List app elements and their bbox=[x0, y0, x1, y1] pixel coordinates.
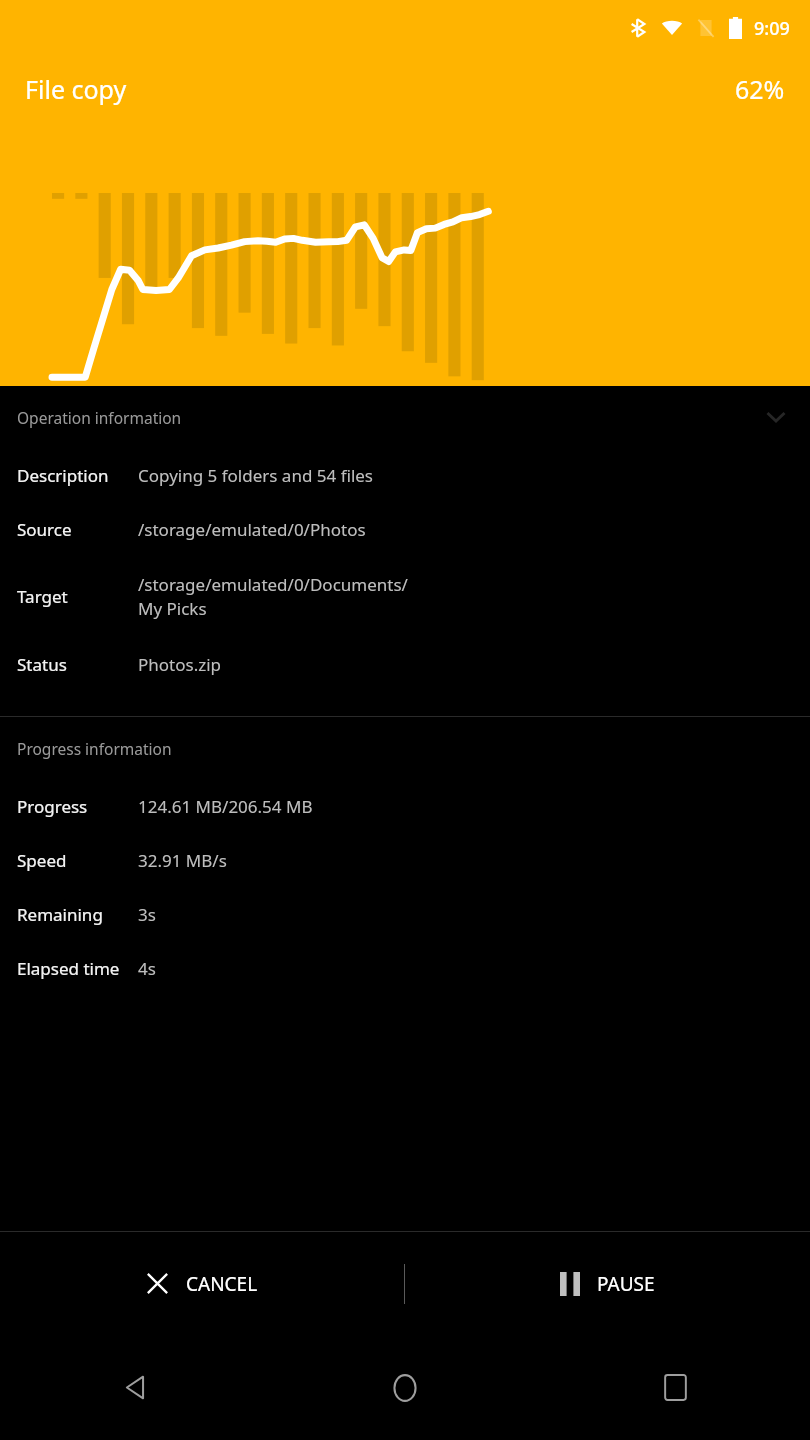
staticText: Description bbox=[17, 464, 138, 487]
staticText: Speed bbox=[17, 849, 138, 872]
button[interactable]: Back bbox=[0, 1335, 270, 1440]
staticText: Photos.zip bbox=[138, 653, 222, 676]
button[interactable]: Operation information bbox=[0, 386, 810, 448]
button[interactable]: CANCEL bbox=[0, 1232, 404, 1335]
button[interactable]: PAUSE bbox=[405, 1232, 810, 1335]
staticText: Progress information bbox=[17, 738, 172, 759]
staticText: 4s bbox=[138, 957, 156, 980]
staticText: CANCEL bbox=[186, 1271, 258, 1297]
staticText: Operation information bbox=[17, 407, 182, 428]
staticText: 124.61 MB/206.54 MB bbox=[138, 795, 313, 818]
staticText: Status bbox=[17, 653, 138, 676]
staticText: PAUSE bbox=[597, 1271, 655, 1297]
staticText: Copying 5 folders and 54 files bbox=[138, 464, 374, 487]
button[interactable]: Home bbox=[270, 1335, 540, 1440]
staticText: Remaining bbox=[17, 903, 138, 926]
button[interactable]: Recent apps bbox=[540, 1335, 810, 1440]
staticText: 32.91 MB/s bbox=[138, 849, 227, 872]
staticText: Target bbox=[17, 585, 138, 608]
staticText: Progress bbox=[17, 795, 138, 818]
staticText: Source bbox=[17, 518, 138, 541]
staticText: /storage/emulated/0/Documents/ My Picks bbox=[138, 573, 408, 620]
staticText: 9:09 bbox=[754, 16, 790, 41]
staticText: Elapsed time bbox=[17, 957, 138, 980]
staticText: /storage/emulated/0/Photos bbox=[138, 518, 366, 541]
staticText: File copy bbox=[25, 72, 127, 106]
staticText: 62% bbox=[735, 72, 785, 106]
other: Collapse bbox=[759, 400, 793, 434]
staticText: 3s bbox=[138, 903, 156, 926]
